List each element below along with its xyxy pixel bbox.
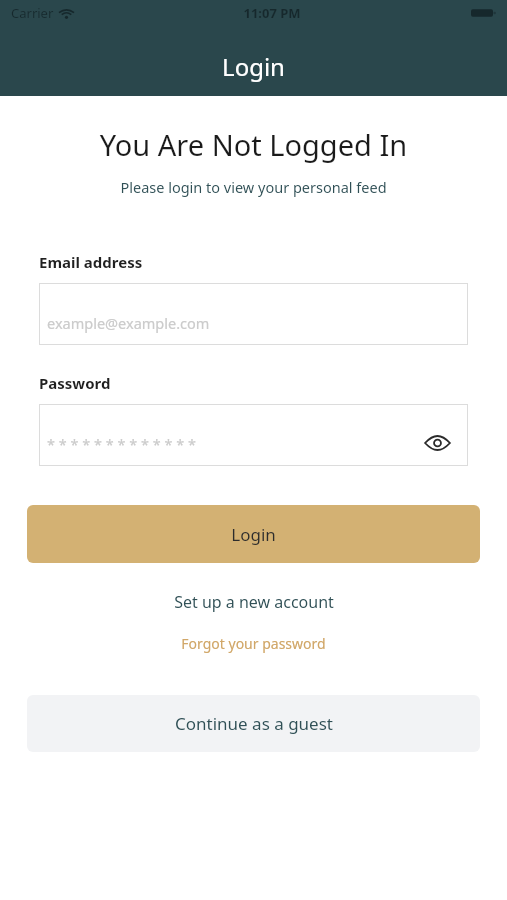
staticText: Carrier [11, 4, 54, 22]
staticText: * * * * * * * * * * * * * [47, 434, 197, 454]
button[interactable]: Forgot your password [0, 629, 507, 658]
button[interactable]: example@example.com [39, 283, 468, 345]
staticText: You Are Not Logged In [0, 125, 507, 164]
staticText: example@example.com [47, 313, 210, 333]
staticText: Forgot your password [181, 634, 326, 653]
staticText: Login [231, 523, 276, 546]
staticText: Please login to view your personal feed [0, 177, 507, 197]
staticText: Continue as a guest [175, 712, 333, 735]
button[interactable]: Login [27, 505, 480, 563]
button[interactable]: Show password [420, 426, 454, 460]
button[interactable]: Continue as a guest [27, 695, 480, 752]
button[interactable]: Set up a new account [0, 585, 507, 619]
staticText: Login [222, 50, 285, 83]
staticText: 11:07 PM [243, 4, 301, 22]
staticText: Set up a new account [174, 591, 334, 613]
button[interactable]: * * * * * * * * * * * * * [39, 404, 468, 466]
staticText: Email address [39, 252, 143, 272]
staticText: Password [39, 373, 111, 393]
